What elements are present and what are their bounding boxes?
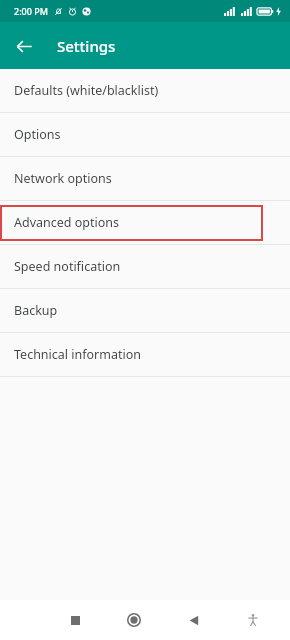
button[interactable]: Defaults (white/blacklist) bbox=[0, 69, 290, 112]
staticText: Network options bbox=[14, 170, 112, 187]
staticText: Options bbox=[14, 126, 61, 143]
staticText: 2:00 PM bbox=[14, 5, 48, 17]
button[interactable]: Accessibility bbox=[238, 605, 268, 635]
staticText: Technical information bbox=[14, 346, 141, 363]
staticText: Backup bbox=[14, 302, 58, 319]
button[interactable]: Home bbox=[119, 605, 149, 635]
button[interactable]: Technical information bbox=[0, 333, 290, 376]
button[interactable]: Speed notification bbox=[0, 245, 290, 288]
button[interactable]: Network options bbox=[0, 157, 290, 200]
button[interactable]: Options bbox=[0, 113, 290, 156]
staticText: Speed notification bbox=[14, 258, 121, 275]
staticText: Settings bbox=[57, 36, 116, 56]
button[interactable]: Recent apps bbox=[60, 605, 90, 635]
button[interactable]: Backup bbox=[0, 289, 290, 332]
staticText: Advanced options bbox=[14, 214, 120, 231]
button[interactable]: Back bbox=[8, 30, 40, 62]
staticText: Defaults (white/blacklist) bbox=[14, 82, 159, 99]
button[interactable]: Advanced options bbox=[0, 201, 290, 244]
button[interactable]: Back bbox=[179, 605, 209, 635]
